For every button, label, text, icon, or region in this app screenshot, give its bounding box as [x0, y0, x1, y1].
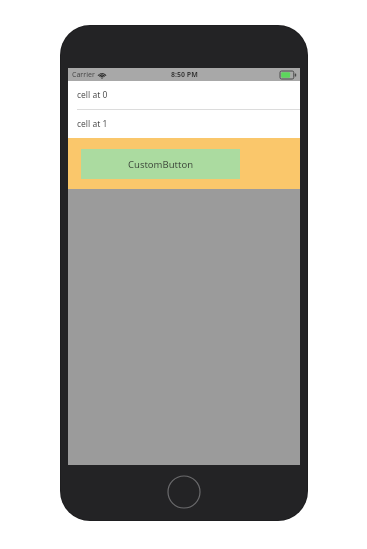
- button[interactable]: cell at 1: [68, 110, 300, 138]
- button[interactable]: Home: [167, 475, 201, 509]
- staticText: cell at 0: [77, 89, 108, 101]
- staticText: Carrier: [72, 70, 95, 80]
- button[interactable]: cell at 0: [68, 81, 300, 109]
- staticText: CustomButton: [128, 158, 194, 171]
- staticText: cell at 1: [77, 118, 108, 130]
- staticText: 8:50 PM: [171, 70, 198, 80]
- button[interactable]: CustomButton: [81, 149, 240, 179]
